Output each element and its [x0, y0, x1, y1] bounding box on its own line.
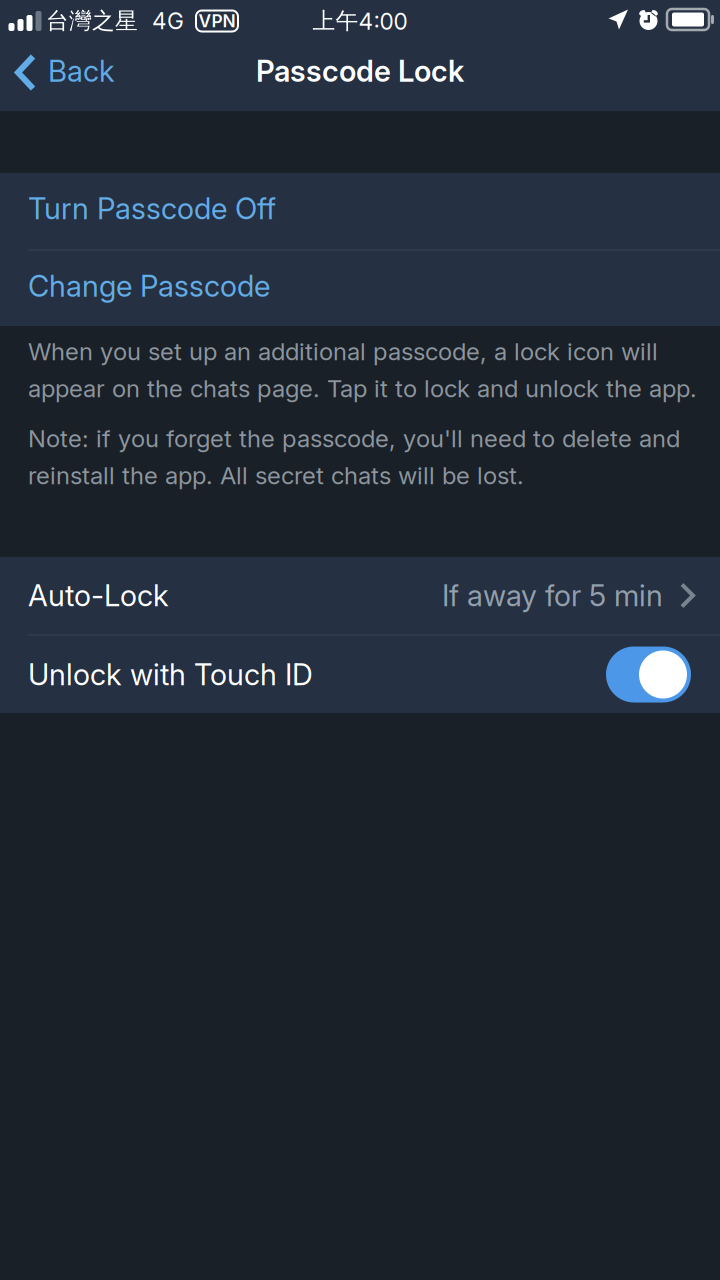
staticText: Turn Passcode Off — [28, 191, 276, 226]
staticText: Note: if you forget the passcode, you'll… — [28, 424, 680, 453]
button[interactable]: Back — [0, 44, 131, 108]
staticText: If away for 5 min — [442, 578, 663, 613]
staticText: appear on the chats page. Tap it to lock… — [28, 374, 697, 403]
staticText: Change Passcode — [28, 268, 270, 304]
staticText: 台灣之星 — [46, 7, 138, 35]
button[interactable]: Auto-Lock — [0, 557, 720, 634]
staticText: Back — [48, 53, 115, 89]
button[interactable]: Change Passcode — [0, 251, 720, 326]
staticText: Auto-Lock — [28, 578, 169, 613]
staticText: VPN — [198, 10, 235, 31]
staticText: When you set up an additional passcode, … — [28, 337, 658, 366]
button[interactable]: Turn Passcode Off — [0, 173, 720, 249]
staticText: 4G — [152, 7, 184, 35]
staticText: Unlock with Touch ID — [28, 657, 313, 692]
staticText: Passcode Lock — [256, 53, 464, 89]
button[interactable]: Unlock with Touch ID — [0, 636, 720, 713]
staticText: reinstall the app. All secret chats will… — [28, 461, 524, 490]
staticText: 上午4:00 — [312, 7, 407, 35]
